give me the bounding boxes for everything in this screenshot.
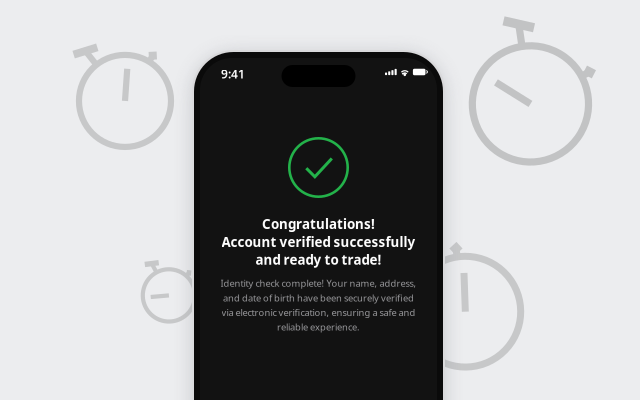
staticText: and ready to trade!: [255, 251, 381, 268]
staticText: reliable experience.: [277, 321, 360, 333]
staticText: Identity check complete! Your name, addr…: [220, 277, 416, 289]
staticText: Account verified successfully: [221, 233, 415, 251]
staticText: via electronic verification, ensuring a …: [221, 306, 415, 319]
staticText: and date of birth have been securely ver…: [223, 292, 414, 304]
staticText: 9:41: [221, 66, 245, 82]
staticText: Congratulations!: [262, 215, 375, 233]
